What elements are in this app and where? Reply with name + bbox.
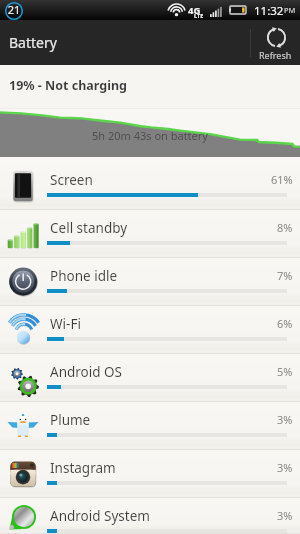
- staticText: 4G: [188, 4, 201, 17]
- staticText: 3%: [277, 412, 293, 427]
- staticText: 5%: [277, 364, 293, 379]
- staticText: 8%: [277, 220, 293, 235]
- button[interactable]: Instagram: [0, 450, 300, 498]
- button[interactable]: Cell standby: [0, 210, 300, 258]
- staticText: Cell standby: [50, 219, 128, 237]
- staticText: Phone idle: [50, 267, 118, 285]
- staticText: Android System: [50, 507, 150, 525]
- staticText: Plume: [50, 411, 91, 429]
- staticText: 3%: [277, 460, 293, 475]
- staticText: Refresh: [259, 49, 292, 61]
- button[interactable]: Refresh: [251, 20, 300, 65]
- button[interactable]: Phone idle: [0, 258, 300, 306]
- staticText: PM: [284, 5, 296, 15]
- staticText: 7%: [277, 268, 293, 283]
- button[interactable]: Android OS: [0, 354, 300, 402]
- staticText: Wi-Fi: [50, 315, 81, 333]
- staticText: Android OS: [50, 363, 122, 381]
- button[interactable]: Screen: [0, 162, 300, 210]
- button[interactable]: Plume: [0, 402, 300, 450]
- staticText: 11:32: [254, 3, 284, 19]
- staticText: 21: [4, 2, 24, 17]
- staticText: 5h 20m 43s on battery: [92, 128, 208, 143]
- staticText: 19% - Not charging: [9, 77, 127, 94]
- staticText: Battery: [9, 33, 57, 52]
- staticText: 3%: [277, 508, 293, 523]
- staticText: 6%: [277, 316, 293, 331]
- staticText: Instagram: [50, 459, 116, 477]
- staticText: Screen: [50, 171, 93, 189]
- staticText: LTE: [194, 12, 204, 19]
- staticText: 61%: [271, 172, 293, 187]
- button[interactable]: Wi-Fi: [0, 306, 300, 354]
- button[interactable]: Android System: [0, 498, 300, 534]
